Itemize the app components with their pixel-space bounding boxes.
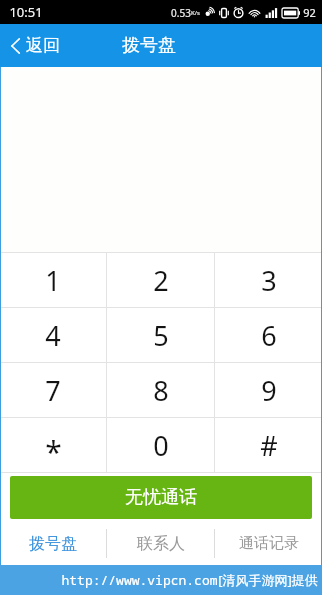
staticText: 3 [261, 262, 277, 299]
staticText: 拨号盘 [122, 34, 176, 57]
staticText: 5 [153, 317, 169, 354]
button[interactable]: 4 [0, 308, 106, 362]
button[interactable]: 联系人 [107, 522, 214, 565]
staticText: 拨号盘 [29, 534, 77, 554]
button[interactable]: 6 [215, 308, 322, 362]
staticText: 1 [45, 262, 61, 299]
button[interactable]: 9 [215, 363, 322, 417]
staticText: 7 [45, 372, 61, 409]
staticText: 0.53 [171, 6, 191, 20]
button[interactable]: 0 [107, 418, 214, 472]
button[interactable]: 2 [107, 253, 214, 307]
staticText: # [260, 427, 278, 464]
button[interactable]: 1 [0, 253, 106, 307]
button[interactable]: 拨号盘 [0, 522, 106, 565]
staticText: * [45, 431, 62, 472]
staticText: 10:51 [9, 3, 43, 21]
staticText: 4 [45, 317, 61, 354]
button[interactable]: 通话记录 [215, 522, 322, 565]
staticText: 无忧通话 [125, 486, 197, 509]
button[interactable]: 7 [0, 363, 106, 417]
button[interactable]: 5 [107, 308, 214, 362]
staticText: 92 [303, 5, 316, 20]
staticText: 0 [153, 427, 169, 464]
staticText: 6 [261, 317, 277, 354]
staticText: 通话记录 [239, 534, 299, 553]
button[interactable]: # [215, 418, 322, 472]
staticText: 联系人 [137, 534, 185, 554]
staticText: 9 [261, 372, 277, 409]
staticText: K/s [191, 9, 200, 17]
button[interactable]: * [0, 418, 106, 472]
button[interactable]: 无忧通话 [10, 476, 312, 519]
staticText: 2 [153, 262, 169, 299]
button[interactable]: 8 [107, 363, 214, 417]
button[interactable]: 3 [215, 253, 322, 307]
button[interactable]: 返回 [0, 24, 72, 67]
staticText: 8 [153, 372, 169, 409]
staticText: [清风手游网]提供 [218, 571, 318, 589]
staticText: 返回 [26, 35, 60, 56]
staticText: http://www.vipcn.com [61, 571, 218, 589]
